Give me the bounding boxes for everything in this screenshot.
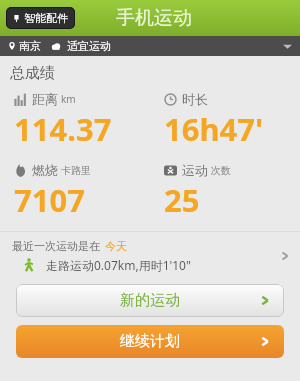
- staticText: 燃烧: [32, 162, 58, 178]
- staticText: 南京: [19, 39, 41, 53]
- staticText: 智能配件: [24, 11, 68, 25]
- staticText: 16h47': [164, 108, 264, 150]
- staticText: 次数: [211, 164, 231, 177]
- button[interactable]: 智能配件: [6, 7, 75, 29]
- staticText: 手机运动: [116, 6, 192, 30]
- button[interactable]: 南京: [0, 36, 300, 56]
- staticText: 距离: [32, 91, 58, 107]
- staticText: 继续计划: [120, 332, 180, 351]
- staticText: 今天: [105, 239, 127, 253]
- staticText: 卡路里: [61, 164, 91, 177]
- staticText: 运动: [182, 162, 208, 178]
- staticText: 总成绩: [10, 64, 55, 83]
- button[interactable]: 继续计划: [16, 325, 284, 358]
- staticText: 适宜运动: [67, 39, 111, 53]
- button[interactable]: 最近一次运动是在: [0, 232, 300, 278]
- staticText: 25: [164, 179, 200, 221]
- staticText: 时长: [182, 91, 208, 107]
- staticText: 最近一次运动是在: [12, 239, 100, 253]
- button[interactable]: 新的运动: [16, 284, 284, 317]
- staticText: 114.37: [14, 108, 112, 150]
- staticText: km: [61, 92, 76, 106]
- staticText: 7107: [14, 179, 85, 221]
- staticText: 新的运动: [120, 291, 180, 310]
- staticText: 走路运动0.07km,用时1'10": [46, 257, 191, 273]
